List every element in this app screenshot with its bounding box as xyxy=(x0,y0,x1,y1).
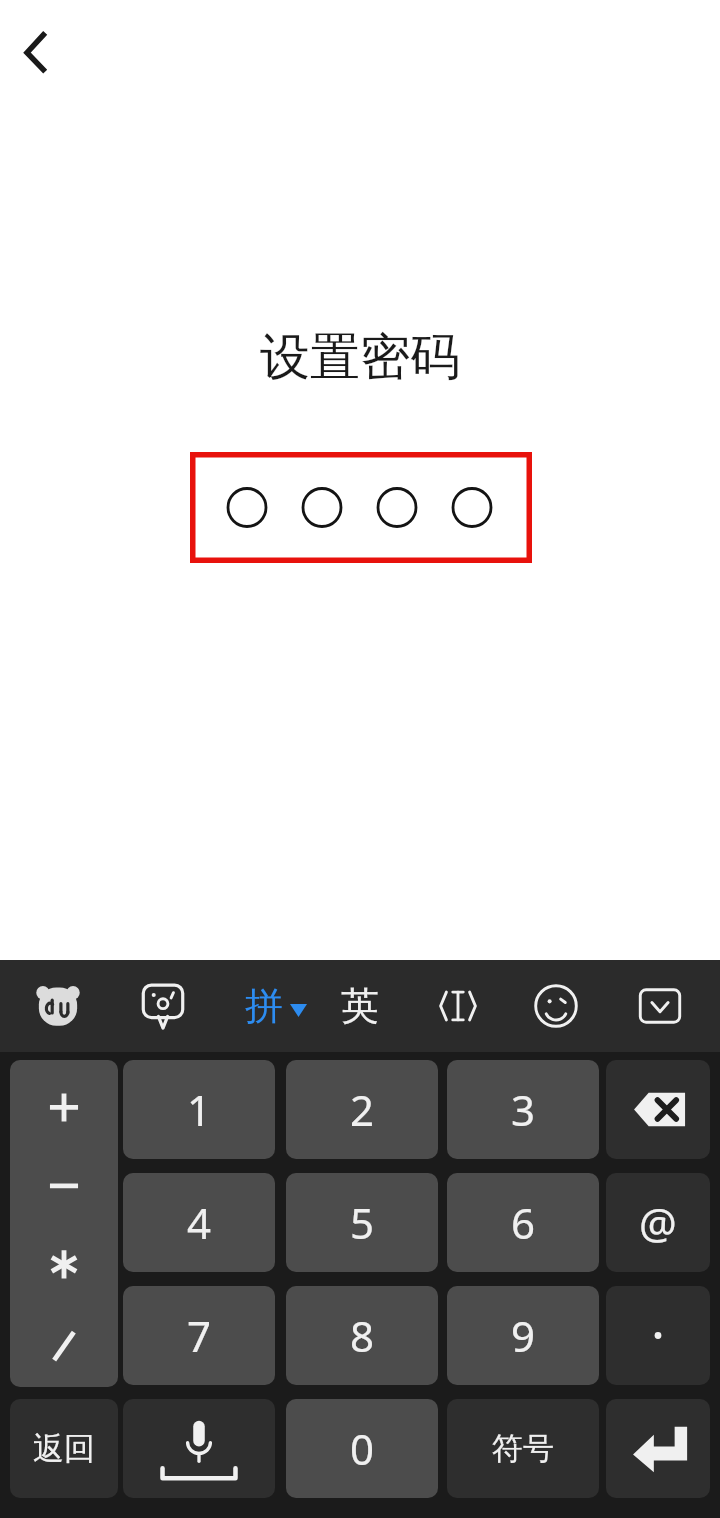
button[interactable]: 7 xyxy=(123,1286,275,1385)
staticText: 1 xyxy=(187,1081,212,1138)
button[interactable]: 返回 xyxy=(10,1399,118,1498)
staticText: @ xyxy=(639,1194,677,1251)
staticText: 6 xyxy=(511,1194,536,1251)
button[interactable]: 8 xyxy=(286,1286,438,1385)
staticText: 返回 xyxy=(33,1429,95,1468)
staticText: 符号 xyxy=(492,1429,554,1468)
button[interactable]: Baidu input menu xyxy=(29,977,87,1035)
button[interactable]: Password entry xyxy=(190,452,532,563)
button[interactable]: Pinyin mode xyxy=(235,977,293,1035)
button[interactable]: 0 xyxy=(286,1399,438,1498)
button[interactable]: Backspace xyxy=(606,1060,710,1159)
button[interactable]: Back xyxy=(6,18,76,86)
button[interactable]: 1 xyxy=(123,1060,275,1159)
button[interactable]: @ xyxy=(606,1173,710,1272)
staticText: 设置密码 xyxy=(260,326,460,388)
button[interactable]: 3 xyxy=(447,1060,599,1159)
button[interactable]: Voice panel xyxy=(134,977,192,1035)
button[interactable]: 6 xyxy=(447,1173,599,1272)
button[interactable]: Hide keyboard xyxy=(631,977,689,1035)
button[interactable]: Voice input xyxy=(123,1399,275,1498)
button[interactable]: 符号 xyxy=(447,1399,599,1498)
button[interactable]: Operators xyxy=(10,1060,118,1387)
staticText: 9 xyxy=(511,1307,536,1364)
button[interactable]: Enter xyxy=(606,1399,710,1498)
button[interactable]: Period xyxy=(606,1286,710,1385)
staticText: 英 xyxy=(341,982,379,1030)
staticText: 5 xyxy=(350,1194,375,1251)
staticText: 3 xyxy=(511,1081,536,1138)
button[interactable]: 2 xyxy=(286,1060,438,1159)
staticText: 7 xyxy=(187,1307,212,1364)
staticText: 8 xyxy=(350,1307,375,1364)
staticText: 拼 xyxy=(245,982,283,1030)
staticText: 2 xyxy=(350,1081,375,1138)
button[interactable]: 5 xyxy=(286,1173,438,1272)
button[interactable]: English mode xyxy=(331,977,389,1035)
button[interactable]: 9 xyxy=(447,1286,599,1385)
staticText: 0 xyxy=(350,1420,375,1477)
staticText: 4 xyxy=(187,1194,212,1251)
button[interactable]: 4 xyxy=(123,1173,275,1272)
button[interactable]: Emoji xyxy=(527,977,585,1035)
button[interactable]: Move cursor xyxy=(429,977,487,1035)
